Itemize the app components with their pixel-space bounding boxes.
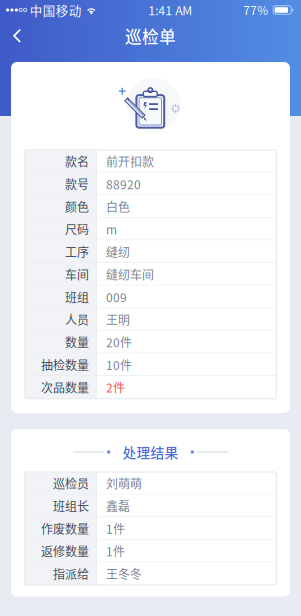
staticText: m	[106, 220, 117, 238]
staticText: 巡检员	[53, 475, 89, 492]
staticText: 10件	[106, 356, 132, 373]
staticText: 巡检单	[125, 24, 176, 48]
staticText: 王明	[106, 311, 130, 328]
staticText: 20件	[106, 333, 132, 351]
staticText: 2件	[106, 379, 125, 396]
staticText: 工序	[65, 243, 89, 260]
staticText: 88920	[106, 175, 141, 193]
staticText: 009	[106, 288, 127, 306]
staticText: 抽检数量	[41, 356, 89, 373]
staticText: 1:41 AM	[148, 1, 192, 19]
staticText: 缝纫	[106, 243, 130, 260]
button[interactable]: Back	[0, 20, 38, 52]
staticText: 人员	[65, 311, 89, 328]
staticText: 77%	[243, 1, 268, 18]
staticText: 班组长	[53, 497, 89, 515]
staticText: 款号	[65, 175, 89, 193]
staticText: 处理结果	[122, 442, 178, 462]
staticText: 指派给	[53, 565, 89, 582]
staticText: 尺码	[65, 220, 89, 238]
staticText: 班组	[65, 288, 89, 306]
staticText: 前开扣款	[106, 153, 154, 170]
staticText: 数量	[65, 333, 89, 351]
staticText: 1件	[106, 520, 125, 537]
staticText: 刘萌萌	[106, 475, 142, 492]
staticText: 1件	[106, 542, 125, 560]
staticText: 颜色	[65, 198, 89, 215]
staticText: 中国移动	[30, 1, 82, 19]
staticText: 返修数量	[41, 542, 89, 560]
staticText: 鑫磊	[106, 497, 130, 515]
staticText: 次品数量	[41, 379, 89, 396]
staticText: 王冬冬	[106, 565, 142, 582]
staticText: 款名	[65, 153, 89, 170]
staticText: 缝纫车间	[106, 266, 154, 283]
staticText: 白色	[106, 198, 130, 215]
staticText: 作废数量	[41, 520, 89, 537]
staticText: 车间	[65, 266, 89, 283]
